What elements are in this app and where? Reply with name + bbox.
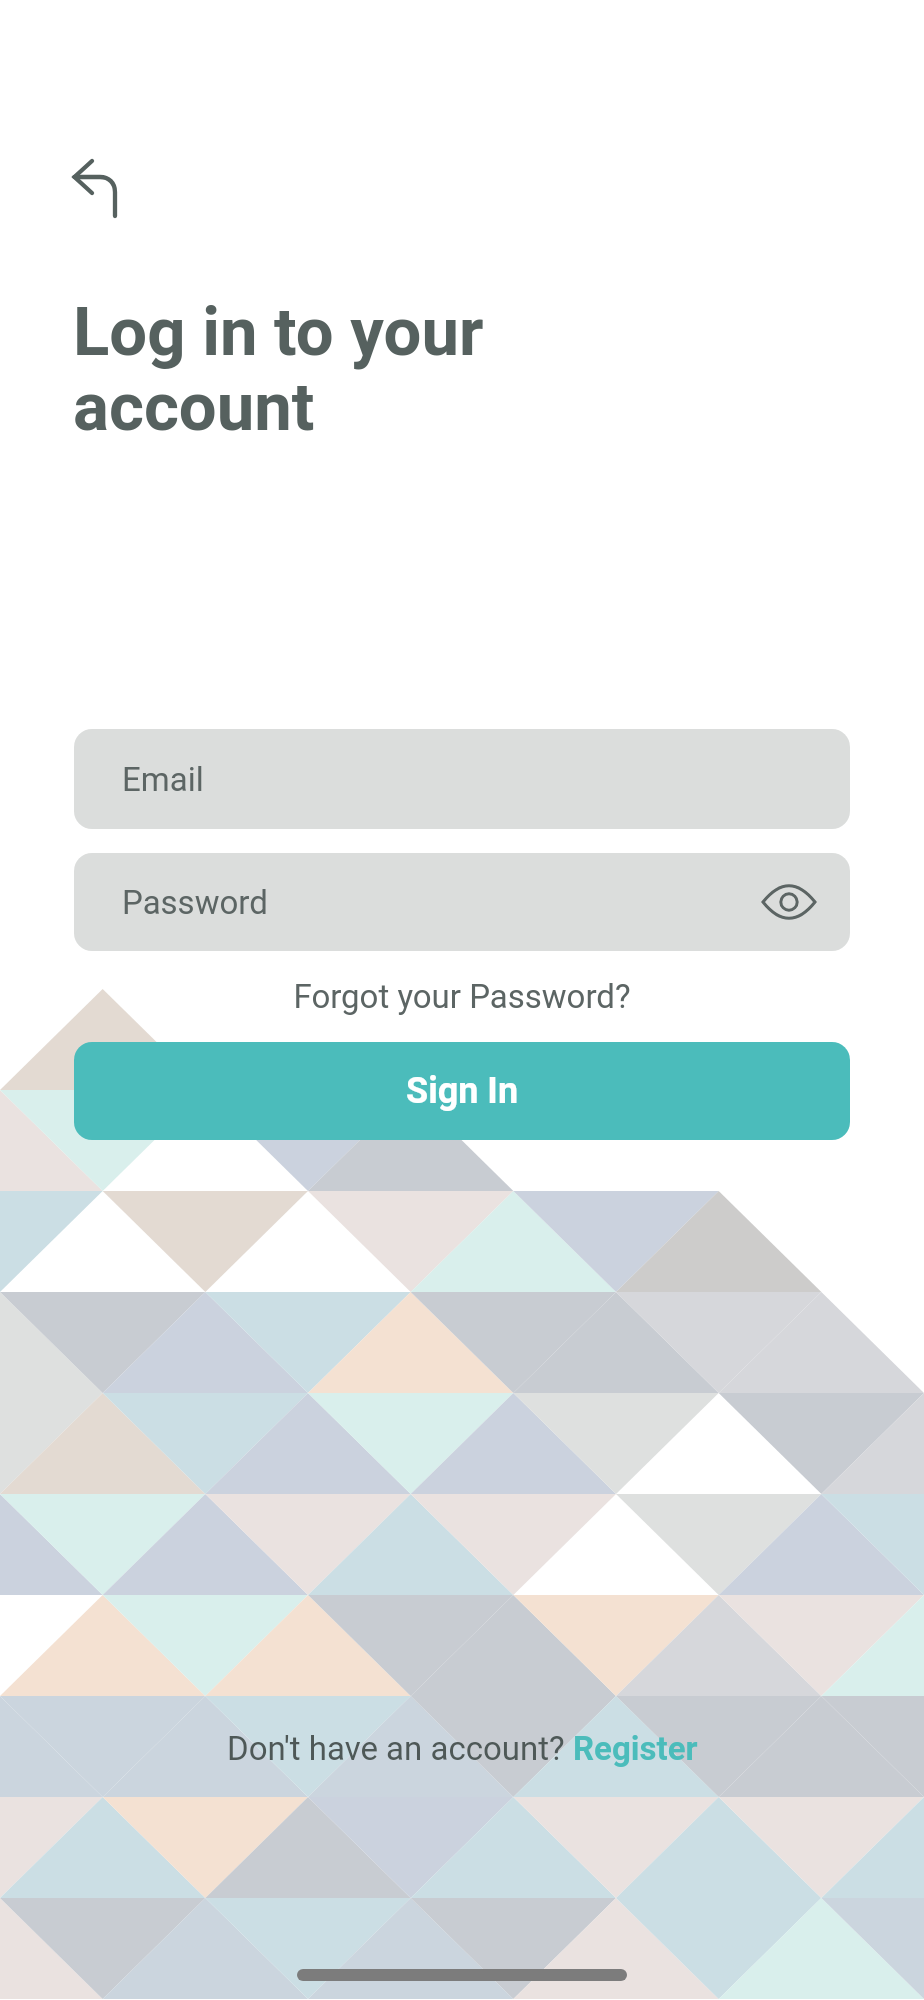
button[interactable]: Password bbox=[74, 853, 850, 951]
staticText: Sign In bbox=[406, 1070, 519, 1112]
staticText: Log in to your account bbox=[73, 293, 484, 446]
button[interactable]: Forgot your Password? bbox=[74, 977, 850, 1016]
button[interactable]: Back bbox=[62, 150, 130, 218]
staticText: Password bbox=[122, 883, 268, 922]
button[interactable]: Sign In bbox=[74, 1042, 850, 1140]
button[interactable]: Register bbox=[573, 1729, 698, 1768]
staticText: Email bbox=[122, 760, 204, 799]
staticText: Don't have an account? bbox=[227, 1729, 573, 1768]
button[interactable]: Email bbox=[74, 729, 850, 829]
button[interactable]: Show password bbox=[760, 873, 818, 931]
